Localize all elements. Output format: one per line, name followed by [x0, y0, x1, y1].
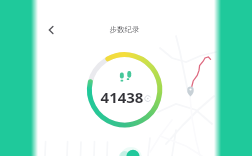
- staticText: 步数纪录: [77, 25, 172, 156]
- button[interactable]: Back: [39, 18, 63, 42]
- staticText: 41438: [99, 87, 145, 107]
